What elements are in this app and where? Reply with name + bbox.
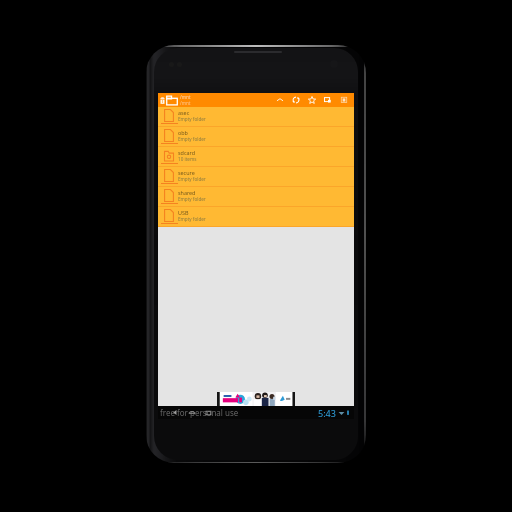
staticText: Empty folder xyxy=(178,176,206,182)
button[interactable]: secure xyxy=(158,167,354,187)
staticText: asec xyxy=(178,109,190,116)
button[interactable]: obb xyxy=(158,127,354,147)
staticText: obb xyxy=(178,129,188,136)
button[interactable]: USB xyxy=(158,207,354,227)
button[interactable]: Delete xyxy=(158,93,166,107)
staticText: Empty folder xyxy=(178,136,206,142)
staticText: USB xyxy=(178,209,189,216)
button[interactable]: /mnt xyxy=(166,93,191,107)
button[interactable]: Home xyxy=(183,406,200,419)
staticText: 5:43 xyxy=(318,407,336,419)
button[interactable]: New folder xyxy=(320,93,336,107)
button[interactable]: More options xyxy=(336,93,352,107)
button[interactable]: Back xyxy=(166,406,183,419)
staticText: sdcard xyxy=(178,149,195,156)
staticText: Empty folder xyxy=(178,116,206,122)
button[interactable]: asec xyxy=(158,107,354,127)
staticText: /mnt xyxy=(180,100,191,106)
staticText: secure xyxy=(178,169,195,176)
staticText: free for personal use xyxy=(160,407,239,418)
button[interactable]: Refresh xyxy=(288,93,304,107)
button[interactable]: Advertisement xyxy=(217,392,295,406)
button[interactable]: sdcard xyxy=(158,147,354,167)
button[interactable]: Collapse xyxy=(272,93,288,107)
button[interactable]: shared xyxy=(158,187,354,207)
button[interactable]: Recent apps xyxy=(200,406,217,419)
staticText: /mnt xyxy=(180,94,191,100)
staticText: Empty folder xyxy=(178,216,206,222)
staticText: shared xyxy=(178,189,196,196)
staticText: Empty folder xyxy=(178,196,206,202)
staticText: 10 items xyxy=(178,156,197,162)
button[interactable]: Bookmark xyxy=(304,93,320,107)
